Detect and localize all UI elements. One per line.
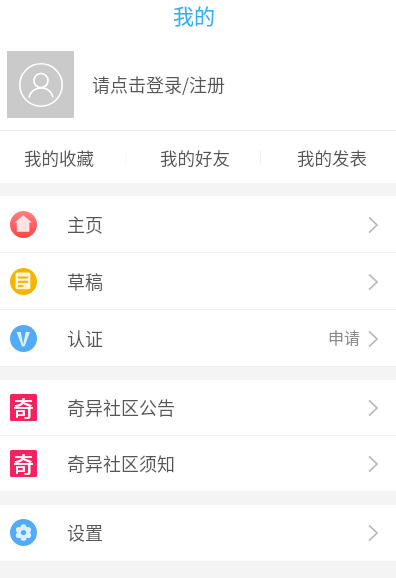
other: 主页 [10, 211, 37, 238]
staticText: 主页 [67, 211, 103, 237]
staticText: 请点击登录/注册 [92, 71, 226, 97]
staticText: 奇 [13, 394, 34, 419]
button[interactable]: 草稿 [0, 253, 396, 310]
staticText: 申请 [328, 325, 361, 348]
other: 认证 [10, 325, 37, 352]
staticText: 我的 [173, 0, 215, 30]
button[interactable]: 奇 [0, 436, 396, 492]
staticText: 我的收藏 [24, 145, 94, 170]
other: 草稿 [10, 268, 37, 295]
button[interactable]: 认证 [0, 310, 396, 367]
staticText: 认证 [67, 325, 103, 351]
button[interactable]: 请点击登录/注册 [0, 30, 396, 130]
button[interactable]: 我的发表 [261, 131, 396, 183]
staticText: 草稿 [67, 268, 103, 294]
button[interactable]: 主页 [0, 196, 396, 253]
staticText: 设置 [67, 519, 103, 545]
staticText: 奇异社区须知 [67, 450, 175, 476]
staticText: 奇异社区公告 [67, 394, 175, 420]
staticText: 我的好友 [160, 145, 230, 170]
button[interactable]: 奇 [0, 380, 396, 436]
button[interactable]: 设置 [0, 505, 396, 562]
button[interactable]: 我的好友 [126, 131, 261, 183]
staticText: 奇 [13, 450, 34, 475]
button[interactable]: 我的收藏 [0, 131, 126, 183]
other: 设置 [10, 519, 37, 546]
staticText: 我的发表 [297, 145, 367, 170]
